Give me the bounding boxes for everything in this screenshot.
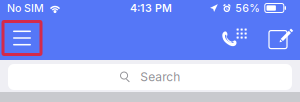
button[interactable]: Keypad bbox=[220, 27, 249, 49]
staticText: Search bbox=[140, 70, 180, 84]
staticText: 56% bbox=[235, 1, 260, 14]
button[interactable]: Search bbox=[8, 64, 292, 90]
staticText: No SIM bbox=[7, 1, 44, 14]
button[interactable]: Menu bbox=[6, 24, 38, 51]
button[interactable]: Compose bbox=[269, 27, 295, 49]
staticText: 4:13 PM bbox=[130, 1, 172, 14]
